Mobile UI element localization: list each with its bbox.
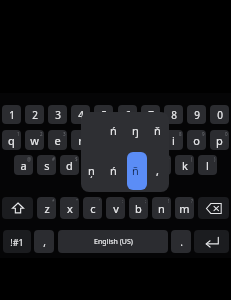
button[interactable]: .	[171, 230, 191, 253]
button[interactable]: 8	[164, 105, 183, 124]
staticText: c	[90, 201, 96, 216]
button[interactable]: ŋ	[124, 110, 146, 150]
button[interactable]: ņ	[80, 150, 102, 190]
staticText: ń	[110, 163, 117, 178]
staticText: b	[135, 201, 142, 216]
button[interactable]: Shift	[2, 197, 33, 219]
staticText: '	[99, 198, 101, 204]
staticText: h	[135, 158, 142, 173]
button[interactable]: a	[14, 155, 33, 175]
staticText: e	[54, 133, 61, 148]
staticText: 6	[133, 131, 136, 137]
staticText: 1	[17, 131, 20, 137]
staticText: n	[158, 201, 165, 216]
button[interactable]: 0	[210, 105, 229, 124]
staticText: x	[67, 201, 73, 216]
button[interactable]: Backspace	[198, 197, 229, 219]
staticText: 7	[156, 131, 159, 137]
button[interactable]: ,	[146, 150, 168, 190]
button[interactable]: p	[210, 130, 229, 150]
button[interactable]: t	[94, 130, 113, 150]
staticText: r	[78, 133, 83, 148]
staticText: 6	[125, 108, 131, 122]
button[interactable]: z	[37, 197, 56, 219]
button[interactable]: v	[106, 197, 125, 219]
staticText: v	[113, 201, 119, 216]
staticText: @	[27, 156, 32, 162]
staticText: *	[52, 198, 55, 204]
staticText: 5	[101, 108, 107, 122]
staticText: w	[30, 133, 39, 148]
button[interactable]: 3	[48, 105, 67, 124]
button[interactable]: 7	[141, 105, 160, 124]
button[interactable]: o	[187, 130, 206, 150]
button[interactable]: 1	[2, 105, 21, 124]
button[interactable]: ñ	[124, 150, 146, 190]
button[interactable]: 9	[187, 105, 206, 124]
staticText: i	[172, 133, 175, 148]
staticText: ņ	[88, 163, 95, 178]
button[interactable]: ń	[102, 150, 124, 190]
staticText: 0	[217, 108, 223, 122]
button[interactable]: k	[175, 155, 194, 175]
button[interactable]: r	[71, 130, 90, 150]
staticText: !#1	[10, 236, 24, 248]
staticText: 8	[179, 131, 182, 137]
button[interactable]: u	[141, 130, 160, 150]
button[interactable]: s	[37, 155, 56, 175]
staticText: 3	[55, 108, 61, 122]
button[interactable]: 6	[118, 105, 137, 124]
button[interactable]: q	[2, 130, 21, 150]
staticText: k	[182, 158, 188, 173]
button[interactable]: b	[129, 197, 148, 219]
button[interactable]: ń	[102, 110, 124, 150]
button[interactable]: d	[60, 155, 79, 175]
staticText: z	[44, 201, 50, 216]
button[interactable]: English (US)	[58, 230, 168, 253]
staticText: d	[66, 158, 73, 173]
button[interactable]: j	[152, 155, 171, 175]
button[interactable]: f	[83, 155, 102, 175]
button[interactable]: 4	[71, 105, 90, 124]
staticText: ŋ	[132, 123, 139, 138]
staticText: m	[179, 201, 190, 216]
staticText: a	[20, 158, 27, 173]
button[interactable]: g	[106, 155, 125, 175]
button[interactable]: l	[198, 155, 217, 175]
staticText: #	[52, 156, 55, 162]
button[interactable]: i	[164, 130, 183, 150]
button[interactable]: e	[48, 130, 67, 150]
staticText: ?	[191, 198, 193, 204]
staticText: g	[112, 158, 119, 173]
button[interactable]: Enter	[194, 230, 229, 253]
staticText: English (US)	[94, 237, 133, 247]
staticText: 5	[109, 131, 112, 137]
button[interactable]: c	[83, 197, 102, 219]
button[interactable]: 5	[94, 105, 113, 124]
button[interactable]: w	[25, 130, 44, 150]
staticText: l	[206, 158, 209, 173]
staticText: ,	[156, 163, 159, 178]
button[interactable]: m	[175, 197, 194, 219]
staticText: 9	[194, 108, 200, 122]
staticText: 3	[63, 131, 66, 137]
staticText: ň	[154, 123, 161, 138]
staticText: !	[168, 198, 170, 204]
button[interactable]: ň	[146, 110, 168, 150]
button[interactable]: h	[129, 155, 148, 175]
button[interactable]: x	[60, 197, 79, 219]
button[interactable]: !#1	[3, 230, 31, 253]
button[interactable]: n	[152, 197, 171, 219]
staticText: :	[122, 198, 124, 204]
button[interactable]: 2	[25, 105, 44, 124]
staticText: 2	[32, 108, 38, 122]
button[interactable]: ,	[34, 230, 54, 253]
button[interactable]: y	[118, 130, 137, 150]
